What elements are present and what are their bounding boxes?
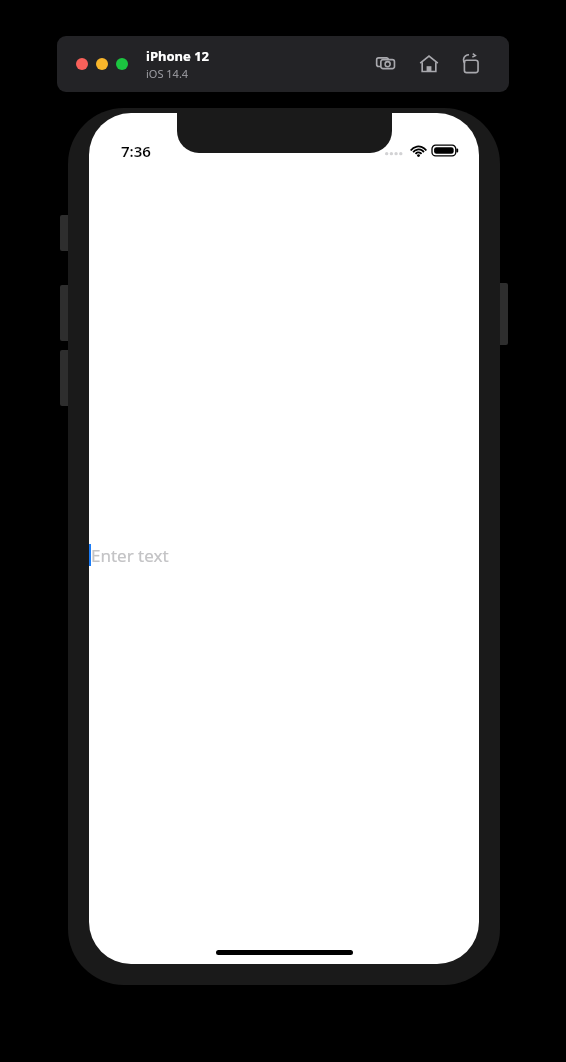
button[interactable]: Rotate <box>459 52 483 76</box>
button[interactable]: Zoom <box>116 58 128 70</box>
staticText: Enter text <box>91 544 169 567</box>
button[interactable]: Close <box>76 58 88 70</box>
staticText: 7:36 <box>121 141 151 161</box>
button[interactable]: Screenshot <box>375 52 399 76</box>
button[interactable]: Home <box>417 52 441 76</box>
staticText: iOS 14.4 <box>146 66 189 81</box>
button[interactable]: Enter text <box>89 538 479 572</box>
button[interactable]: Minimize <box>96 58 108 70</box>
staticText: iPhone 12 <box>146 47 209 65</box>
